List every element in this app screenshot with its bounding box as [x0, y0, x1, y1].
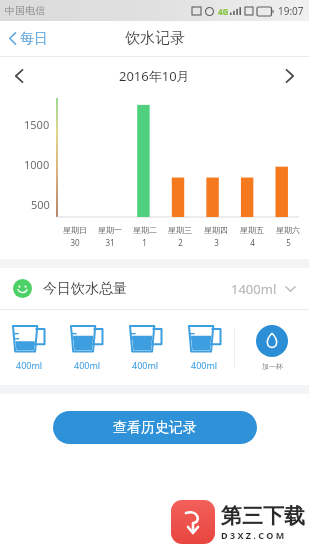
staticText: 查看历史记录: [113, 419, 197, 437]
staticText: 星期二: [133, 225, 157, 235]
staticText: 星期四: [204, 225, 228, 235]
staticText: D 3 X Z . C O M: [221, 529, 285, 541]
staticText: 1: [142, 237, 147, 248]
staticText: 星期五: [240, 225, 264, 235]
staticText: 31: [105, 237, 115, 248]
staticText: 30: [70, 237, 80, 248]
button[interactable]: Next month: [271, 57, 309, 94]
button[interactable]: 今日饮水总量: [0, 268, 309, 309]
button[interactable]: 每日: [0, 21, 57, 56]
staticText: 400ml: [16, 359, 43, 371]
button[interactable]: 400ml cup: [0, 310, 58, 385]
staticText: 400ml: [191, 359, 218, 371]
staticText: 4G: [218, 6, 229, 17]
staticText: 2: [178, 237, 183, 248]
staticText: 饮水记录: [125, 29, 185, 48]
staticText: 19:07: [278, 4, 304, 18]
staticText: 第三下载: [221, 503, 305, 529]
staticText: 4: [250, 237, 255, 248]
staticText: 500: [31, 197, 50, 212]
staticText: 5: [286, 237, 291, 248]
button[interactable]: Previous month: [0, 57, 38, 94]
staticText: 星期日: [63, 225, 87, 235]
staticText: 星期六: [276, 225, 300, 235]
staticText: 星期一: [98, 225, 122, 235]
button[interactable]: 400ml cup: [116, 310, 175, 385]
staticText: 3: [214, 237, 219, 248]
button[interactable]: 400ml cup: [175, 310, 234, 385]
button[interactable]: Add a cup: [235, 310, 309, 385]
staticText: 今日饮水总量: [43, 280, 127, 298]
staticText: 每日: [20, 30, 48, 48]
staticText: 2016年10月: [119, 67, 190, 85]
staticText: 中国电信: [5, 4, 45, 17]
staticText: 1400ml: [231, 280, 277, 298]
button[interactable]: 查看历史记录: [53, 411, 257, 444]
staticText: 400ml: [132, 359, 159, 371]
button[interactable]: 400ml cup: [58, 310, 116, 385]
staticText: 1500: [24, 117, 50, 132]
staticText: 1000: [24, 157, 50, 172]
staticText: 400ml: [74, 359, 101, 371]
staticText: 星期三: [168, 225, 192, 235]
staticText: 加一杯: [262, 362, 283, 371]
